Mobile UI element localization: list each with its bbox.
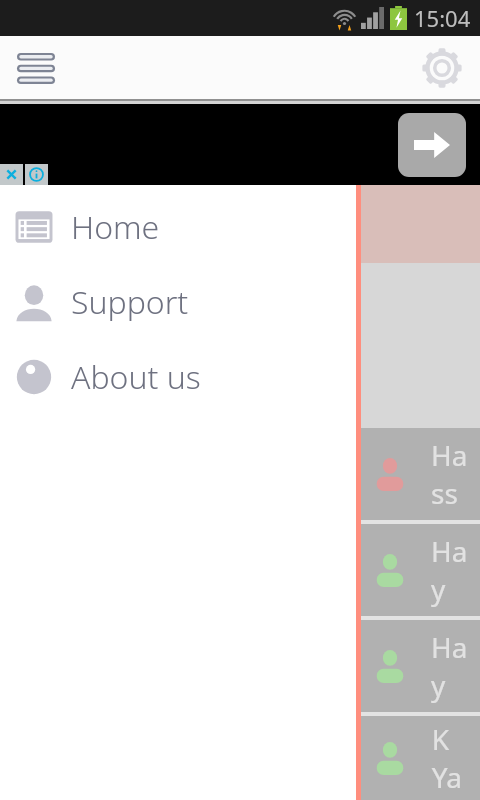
staticText: K [431,720,449,758]
staticText: 15:04 [414,3,471,33]
staticText: Hay [431,532,480,608]
button[interactable]: Hass [0,428,480,520]
button[interactable]: Settings [414,40,470,96]
button[interactable]: K [0,716,480,800]
button[interactable]: Home [0,189,356,264]
button[interactable]: Close ad [0,164,23,185]
button[interactable]: Hay [0,620,480,712]
button[interactable]: Open advertisement [398,113,466,177]
button[interactable]: Open navigation menu [8,40,64,96]
staticText: Home [71,205,160,249]
button[interactable]: Hay [0,524,480,616]
button[interactable]: Ad information [25,164,48,185]
staticText: Hass [431,436,480,512]
button[interactable]: About us [0,339,356,414]
staticText: Ya [431,758,462,796]
staticText: Support [71,280,189,324]
staticText: +212 [36,213,101,251]
staticText: Hay [431,628,480,704]
button[interactable]: Support [0,264,356,339]
staticText: About us [71,355,201,399]
